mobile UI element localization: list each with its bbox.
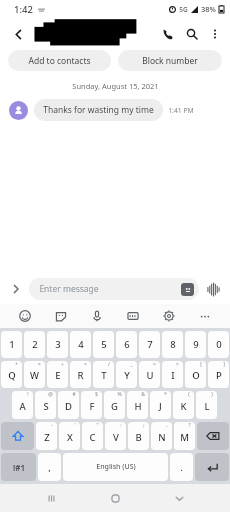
button[interactable]: Back	[166, 485, 192, 511]
button[interactable]: .	[170, 453, 193, 481]
button[interactable]: 9	[185, 331, 206, 358]
button[interactable]: Stickers	[181, 283, 194, 296]
staticText: O	[192, 369, 200, 382]
button[interactable]: Block number	[118, 50, 222, 71]
button[interactable]: !	[12, 391, 33, 419]
button[interactable]: ,	[151, 422, 172, 450]
button[interactable]: ×	[24, 361, 45, 388]
staticText: Q	[8, 369, 16, 382]
button[interactable]: (	[173, 391, 194, 419]
staticText: 4	[78, 338, 84, 351]
staticText: *	[164, 391, 167, 398]
button[interactable]: 1	[1, 331, 22, 358]
button[interactable]: Voice message	[202, 278, 224, 300]
staticText: >	[176, 361, 179, 368]
button[interactable]: More options	[204, 23, 226, 45]
button[interactable]: =	[70, 361, 91, 388]
button[interactable]: 6	[116, 331, 137, 358]
button[interactable]: <	[139, 361, 160, 388]
button[interactable]: Recents	[38, 485, 64, 511]
staticText: /	[108, 361, 110, 368]
button[interactable]: GIF	[122, 305, 144, 327]
staticText: M	[180, 431, 189, 444]
button[interactable]: >	[162, 361, 183, 388]
button[interactable]: *	[150, 391, 171, 419]
staticText: &	[141, 391, 145, 398]
button[interactable]: Add to contacts	[8, 50, 111, 71]
button[interactable]: /	[93, 361, 114, 388]
button[interactable]: $	[81, 391, 102, 419]
button[interactable]: Microphone	[86, 305, 108, 327]
button[interactable]: -	[36, 422, 57, 450]
staticText: S	[43, 400, 49, 413]
button[interactable]: @	[35, 391, 56, 419]
staticText: J	[159, 400, 162, 413]
staticText: H	[134, 400, 142, 413]
staticText: D	[65, 400, 72, 413]
staticText: W	[30, 369, 39, 382]
staticText: :	[120, 422, 122, 429]
button[interactable]: +	[1, 361, 22, 388]
button[interactable]: Sticker	[50, 305, 72, 327]
button[interactable]: Enter message	[29, 278, 199, 300]
button[interactable]: Shift	[1, 422, 34, 450]
button[interactable]: Backspace	[197, 422, 229, 450]
staticText: @	[48, 391, 53, 398]
button[interactable]: ;	[128, 422, 149, 450]
button[interactable]: "	[82, 422, 103, 450]
staticText: Enter message	[39, 283, 99, 295]
button[interactable]: !#1	[1, 453, 36, 481]
staticText: !#1	[13, 462, 25, 473]
staticText: K	[180, 400, 187, 413]
staticText: ×	[38, 361, 41, 368]
button[interactable]: Call	[156, 22, 180, 46]
staticText: !	[27, 391, 29, 398]
staticText: ,	[48, 461, 51, 474]
button[interactable]: Back	[6, 22, 30, 46]
button[interactable]: Settings	[158, 305, 180, 327]
staticText: 1:41 PM	[168, 106, 194, 115]
button[interactable]: ÷	[47, 361, 68, 388]
button[interactable]: _	[116, 361, 137, 388]
staticText: 2	[32, 338, 38, 351]
button[interactable]: Expand	[6, 279, 26, 299]
button[interactable]: More	[194, 305, 216, 327]
button[interactable]: [	[185, 361, 206, 388]
button[interactable]: Enter	[195, 453, 229, 481]
button[interactable]: ]	[208, 361, 229, 388]
button[interactable]: Emoji	[14, 305, 36, 327]
button[interactable]: 5	[93, 331, 114, 358]
staticText: ÷	[61, 361, 64, 368]
staticText: Block number	[142, 55, 198, 67]
button[interactable]: Home	[102, 485, 128, 511]
staticText: G	[111, 400, 118, 413]
button[interactable]: 3	[47, 331, 68, 358]
button[interactable]: Search	[180, 22, 204, 46]
button[interactable]: Thanks for wasting my time	[34, 99, 163, 121]
button[interactable]: :	[105, 422, 126, 450]
button[interactable]: 8	[162, 331, 183, 358]
staticText: Y	[124, 369, 130, 382]
button[interactable]: Contact avatar	[9, 101, 28, 120]
button[interactable]: 7	[139, 331, 160, 358]
button[interactable]: )	[196, 391, 217, 419]
staticText: <	[153, 361, 156, 368]
button[interactable]: ?	[174, 422, 195, 450]
staticText: R	[77, 369, 84, 382]
staticText: X	[67, 431, 73, 444]
button[interactable]: 2	[24, 331, 45, 358]
button[interactable]: ,	[38, 453, 61, 481]
staticText: English (US)	[96, 462, 136, 472]
button[interactable]: #	[58, 391, 79, 419]
button[interactable]: 0	[208, 331, 229, 358]
staticText: E	[55, 369, 61, 382]
staticText: 6	[124, 338, 130, 351]
button[interactable]: 4	[70, 331, 91, 358]
button[interactable]: %	[104, 391, 125, 419]
staticText: U	[146, 369, 154, 382]
button[interactable]: '	[59, 422, 80, 450]
button[interactable]: English (US)	[63, 453, 168, 481]
staticText: ,	[166, 422, 168, 429]
button[interactable]: &	[127, 391, 148, 419]
staticText: )	[211, 391, 213, 398]
